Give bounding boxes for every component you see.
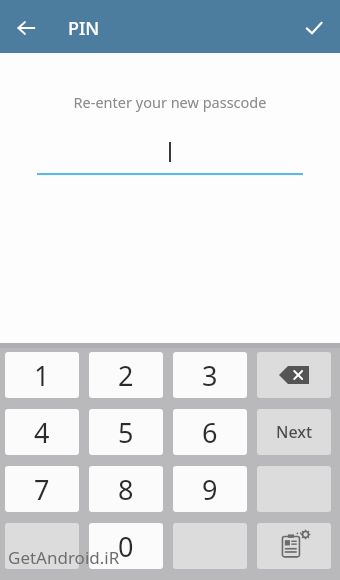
button[interactable]: 1 [5, 352, 79, 398]
staticText: 1 [34, 357, 50, 394]
button[interactable]: 9 [173, 466, 247, 512]
staticText: 0 [118, 528, 134, 565]
button[interactable]: Key [5, 523, 79, 569]
staticText: 7 [34, 471, 50, 508]
button[interactable]: 7 [5, 466, 79, 512]
staticText: 3 [202, 357, 218, 394]
staticText: 4 [34, 414, 50, 451]
staticText: Next [276, 421, 313, 443]
button[interactable]: 3 [173, 352, 247, 398]
button[interactable]: Clipboard settings [257, 523, 331, 569]
button[interactable]: Confirm [296, 10, 332, 46]
button[interactable]: 6 [173, 409, 247, 455]
button[interactable]: 5 [89, 409, 163, 455]
button[interactable]: 2 [89, 352, 163, 398]
staticText: 8 [118, 471, 134, 508]
button[interactable]: Back [8, 10, 44, 46]
staticText: Re-enter your new passcode [0, 92, 340, 112]
button[interactable]: 0 [89, 523, 163, 569]
staticText: 9 [202, 471, 218, 508]
button[interactable]: Backspace [257, 352, 331, 398]
staticText: 2 [118, 357, 134, 394]
staticText: 5 [118, 414, 134, 451]
staticText: 6 [202, 414, 218, 451]
button[interactable]: Next [257, 409, 331, 455]
button[interactable]: 8 [89, 466, 163, 512]
staticText: PIN [68, 16, 100, 41]
button[interactable]: 4 [5, 409, 79, 455]
staticText: GetAndroid.iR [8, 546, 120, 569]
